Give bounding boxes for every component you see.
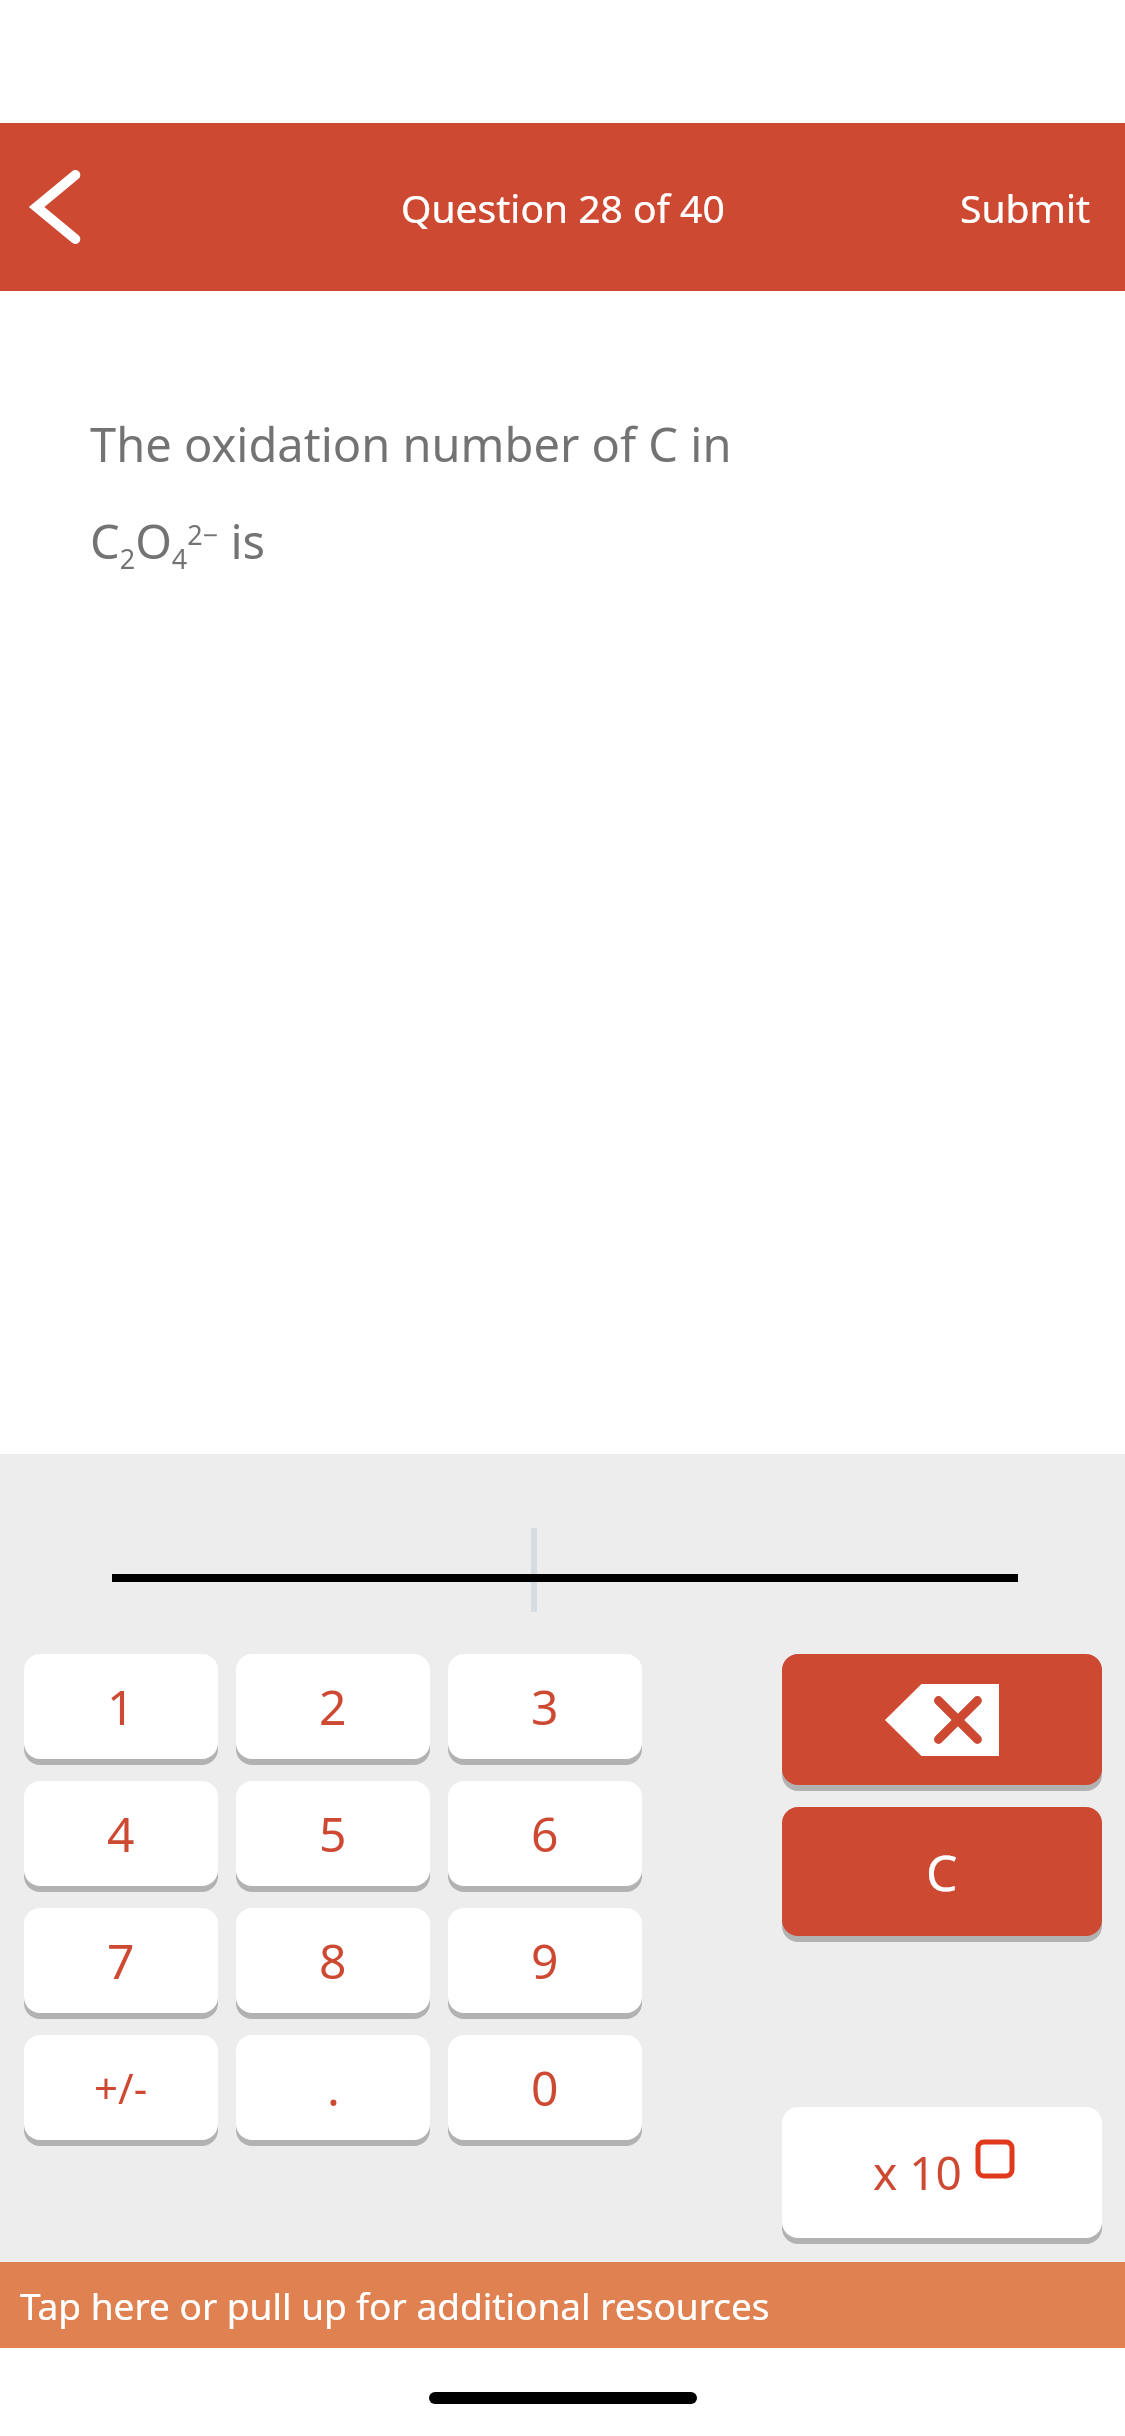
button[interactable]: Submit [926, 123, 1125, 291]
button[interactable]: 1 [24, 1654, 218, 1759]
button[interactable]: Tap here or pull up for additional resou… [0, 2262, 1125, 2348]
button[interactable]: 3 [448, 1654, 642, 1759]
staticText: 8 [319, 1928, 347, 1993]
button[interactable]: 7 [24, 1908, 218, 2013]
button[interactable]: 4 [24, 1781, 218, 1886]
button[interactable]: 9 [448, 1908, 642, 2013]
button[interactable]: 6 [448, 1781, 642, 1886]
staticText: x 10 [873, 2141, 962, 2204]
button[interactable]: +/- [24, 2035, 218, 2140]
button[interactable]: 8 [236, 1908, 430, 2013]
staticText: 9 [531, 1928, 559, 1993]
button[interactable]: Back [0, 123, 112, 291]
staticText: 2 [319, 1674, 347, 1739]
staticText: 5 [319, 1801, 347, 1866]
button[interactable]: C [782, 1807, 1102, 1936]
staticText: Submit [960, 181, 1091, 234]
staticText: 7 [107, 1928, 135, 1993]
staticText: 1 [107, 1674, 135, 1739]
staticText: The oxidation number of C in C2O42− is [90, 412, 1070, 577]
staticText: . [327, 2055, 340, 2120]
button[interactable]: 5 [236, 1781, 430, 1886]
staticText: +/- [94, 2059, 148, 2116]
staticText: 4 [107, 1801, 135, 1866]
staticText: 3 [531, 1674, 559, 1739]
button[interactable]: 2 [236, 1654, 430, 1759]
staticText: 6 [531, 1801, 559, 1866]
staticText: Question 28 of 40 [401, 181, 725, 234]
staticText: Tap here or pull up for additional resou… [20, 2280, 770, 2330]
button[interactable]: x 10 [782, 2107, 1102, 2238]
button[interactable]: 0 [448, 2035, 642, 2140]
staticText: 0 [531, 2055, 559, 2120]
staticText: C [926, 1838, 958, 1906]
button[interactable]: Backspace [782, 1654, 1102, 1785]
button[interactable]: . [236, 2035, 430, 2140]
